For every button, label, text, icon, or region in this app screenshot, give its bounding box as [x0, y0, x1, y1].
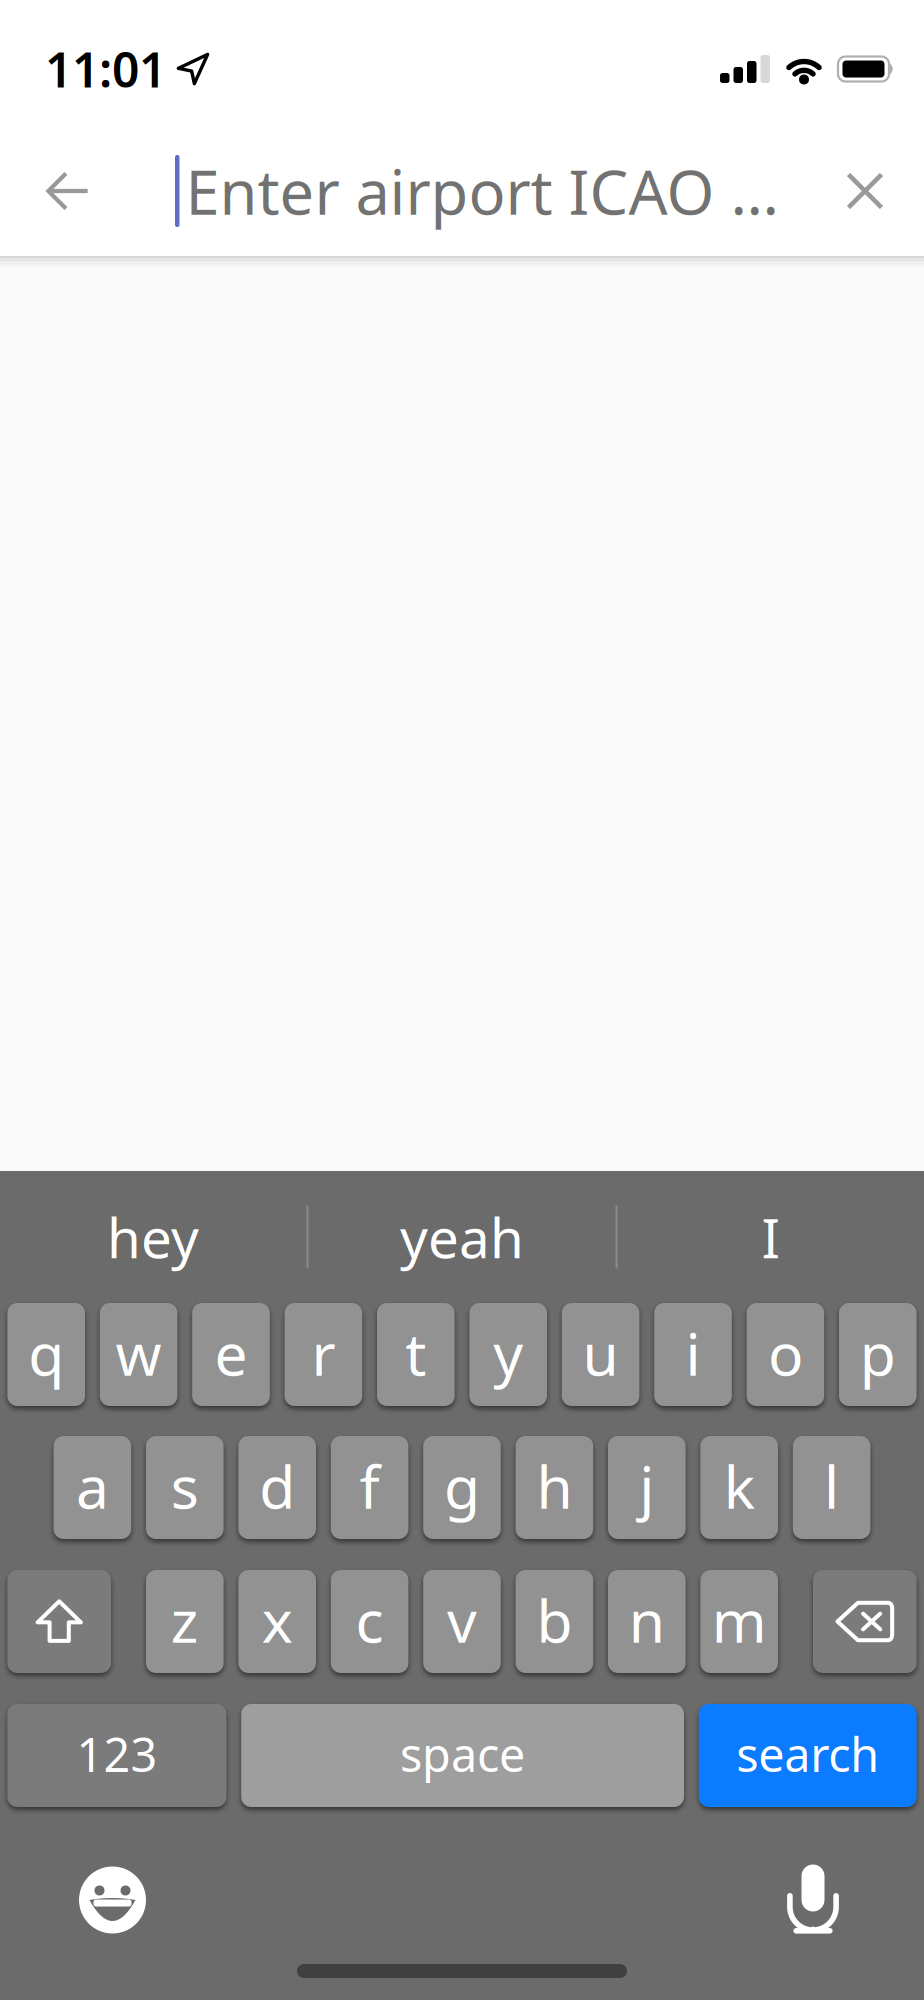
button[interactable]: f — [331, 1436, 408, 1539]
button[interactable]: 123 — [7, 1704, 226, 1807]
staticText: q — [28, 1314, 64, 1392]
button[interactable]: Shift — [7, 1570, 111, 1673]
staticText: z — [171, 1581, 199, 1659]
staticText: c — [356, 1581, 384, 1659]
staticText: b — [536, 1581, 572, 1659]
staticText: x — [262, 1581, 293, 1659]
button[interactable]: u — [562, 1303, 639, 1406]
button[interactable]: Back — [18, 117, 118, 265]
button[interactable]: hey — [0, 1171, 306, 1303]
staticText: n — [629, 1581, 665, 1659]
button[interactable]: Emoji — [79, 1866, 146, 1933]
staticText: l — [824, 1447, 839, 1525]
staticText: s — [171, 1447, 199, 1525]
button[interactable]: Delete — [813, 1570, 917, 1673]
staticText: g — [444, 1447, 480, 1525]
button[interactable]: I — [617, 1171, 924, 1303]
staticText: 123 — [76, 1723, 157, 1785]
button[interactable]: j — [608, 1436, 686, 1539]
button[interactable]: r — [285, 1303, 362, 1406]
staticText: u — [583, 1314, 619, 1392]
button[interactable]: x — [238, 1570, 316, 1673]
button[interactable]: m — [700, 1570, 778, 1673]
button[interactable]: n — [608, 1570, 686, 1673]
button[interactable]: a — [54, 1436, 131, 1539]
staticText: i — [685, 1314, 700, 1392]
staticText: j — [639, 1447, 654, 1525]
staticText: a — [76, 1447, 109, 1525]
button[interactable]: space — [241, 1704, 684, 1807]
button[interactable]: z — [146, 1570, 224, 1673]
button[interactable]: c — [331, 1570, 408, 1673]
button[interactable]: h — [516, 1436, 593, 1539]
staticText: y — [493, 1314, 523, 1392]
button[interactable]: l — [793, 1436, 870, 1539]
button[interactable]: e — [192, 1303, 270, 1406]
staticText: e — [214, 1314, 247, 1392]
staticText: k — [724, 1447, 755, 1525]
button[interactable]: search — [699, 1704, 917, 1807]
staticText: hey — [107, 1201, 199, 1273]
button[interactable]: o — [747, 1303, 824, 1406]
button[interactable]: yeah — [308, 1171, 615, 1303]
button[interactable]: w — [100, 1303, 177, 1406]
button[interactable]: k — [700, 1436, 778, 1539]
staticText: o — [768, 1314, 803, 1392]
button[interactable]: d — [238, 1436, 316, 1539]
button[interactable]: g — [423, 1436, 501, 1539]
staticText: d — [259, 1447, 295, 1525]
button[interactable]: Clear — [820, 117, 910, 265]
button[interactable]: b — [516, 1570, 593, 1673]
staticText: I — [761, 1201, 780, 1273]
staticText: p — [860, 1314, 896, 1392]
button[interactable]: Dictation — [778, 1865, 848, 1935]
button[interactable]: p — [839, 1303, 917, 1406]
staticText: t — [405, 1314, 426, 1392]
staticText: v — [447, 1581, 477, 1659]
staticText: 11:01 — [45, 37, 166, 101]
button[interactable]: i — [654, 1303, 732, 1406]
staticText: space — [400, 1723, 525, 1785]
staticText: search — [736, 1723, 879, 1785]
staticText: w — [116, 1314, 162, 1392]
staticText: f — [360, 1447, 380, 1525]
button[interactable]: s — [146, 1436, 224, 1539]
button[interactable]: v — [423, 1570, 501, 1673]
staticText: Enter airport ICAO ... — [185, 150, 778, 232]
staticText: r — [311, 1314, 335, 1392]
staticText: m — [712, 1581, 767, 1659]
button[interactable]: t — [377, 1303, 455, 1406]
staticText: h — [536, 1447, 572, 1525]
staticText: yeah — [400, 1201, 524, 1273]
button[interactable]: q — [7, 1303, 85, 1406]
button[interactable]: y — [469, 1303, 547, 1406]
